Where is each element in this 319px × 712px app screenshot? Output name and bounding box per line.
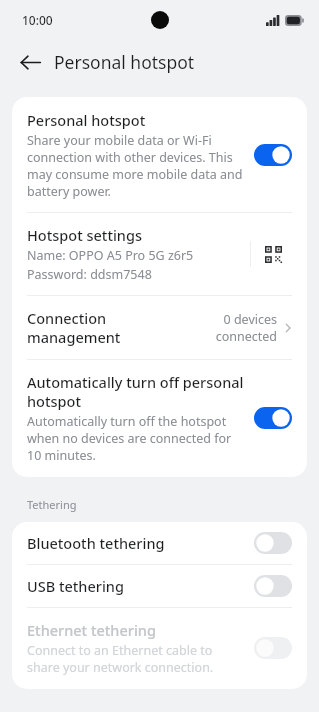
button[interactable]: Ethernet tethering [12,608,307,689]
staticText: Connect to an Ethernet cable to share yo… [27,642,244,676]
staticText: Name: OPPO A5 Pro 5G z6r5 [27,247,194,264]
button[interactable]: On [254,407,292,429]
button[interactable]: Show QR code [251,232,295,276]
staticText: Tethering [27,497,77,512]
button[interactable]: Off [254,637,292,659]
staticText: USB tethering [27,576,254,596]
staticText: Bluetooth tethering [27,533,254,553]
button[interactable]: Hotspot settings [12,213,307,295]
button[interactable]: Bluetooth tethering [12,522,307,564]
staticText: Password: ddsm7548 [27,266,152,283]
staticText: Connection management [27,308,189,347]
button[interactable]: Off [254,575,292,597]
staticText: Automatically turn off the hotspot when … [27,413,244,464]
button[interactable]: Personal hotspot [12,97,307,212]
button[interactable]: Connection management [12,296,307,359]
button[interactable]: On [254,144,292,166]
button[interactable]: Automatically turn off personal hotspot [12,360,307,477]
staticText: Share your mobile data or Wi-Fi connecti… [27,132,244,200]
staticText: Ethernet tethering [27,620,156,640]
button[interactable]: Off [254,532,292,554]
staticText: 0 devices connected [201,311,277,345]
staticText: Automatically turn off personal hotspot [27,372,244,411]
staticText: Personal hotspot [54,50,195,74]
staticText: 10:00 [22,12,53,28]
button[interactable]: USB tethering [12,565,307,607]
staticText: Personal hotspot [27,110,146,130]
staticText: Hotspot settings [27,225,142,245]
button[interactable]: Back [10,42,50,82]
